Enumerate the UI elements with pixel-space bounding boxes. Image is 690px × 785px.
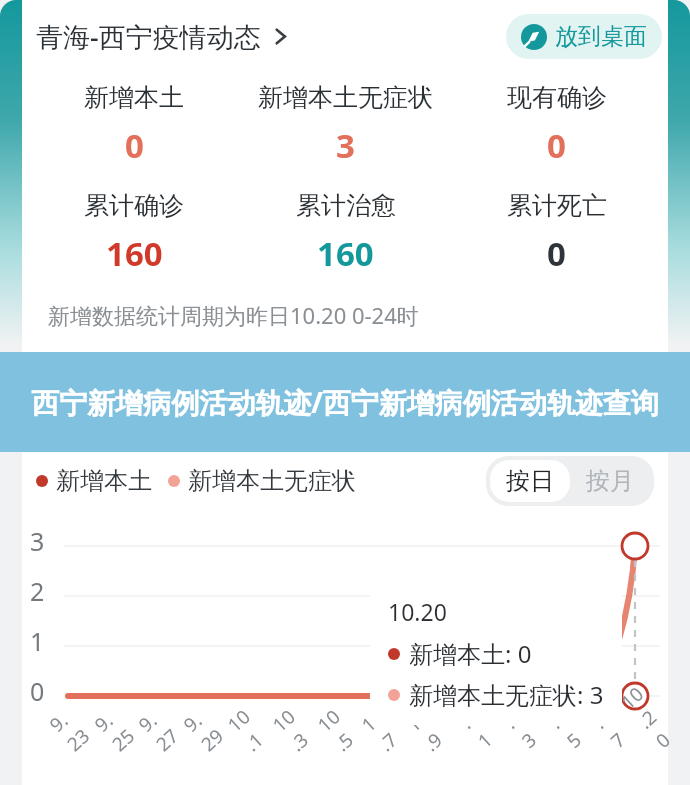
staticText: 新增本土 <box>56 466 152 496</box>
staticText: 10.11 <box>437 678 509 754</box>
staticText: 0 <box>30 674 45 708</box>
button[interactable]: 按日 <box>490 460 570 502</box>
staticText: 西宁新增病例活动轨迹/西宁新增病例活动轨迹查询 <box>31 383 659 421</box>
staticText: 160 <box>317 231 374 276</box>
staticText: 现有确诊 <box>507 82 607 113</box>
staticText: 3 <box>336 123 355 168</box>
staticText: 新增本土: 0 <box>409 637 532 670</box>
staticText: 9.23 <box>44 701 98 757</box>
staticText: 10.3 <box>267 701 321 757</box>
button[interactable]: 按月 <box>570 460 650 502</box>
staticText: 9.27 <box>133 701 187 757</box>
staticText: 0 <box>547 231 566 276</box>
staticText: 新增本土无症状: 3 <box>409 678 604 711</box>
staticText: 9.29 <box>178 701 232 757</box>
staticText: 累计确诊 <box>84 190 184 221</box>
staticText: 10.20 <box>388 596 447 627</box>
staticText: 新增本土无症状 <box>258 82 433 113</box>
staticText: 10.17 <box>570 678 642 754</box>
staticText: 0 <box>125 123 144 168</box>
staticText: 放到桌面 <box>555 22 647 51</box>
staticText: 1 <box>30 624 45 658</box>
staticText: 10.13 <box>481 678 553 754</box>
staticText: 0 <box>547 123 566 168</box>
button[interactable]: Add to home screen <box>506 14 662 59</box>
other: Add to home screen <box>521 24 547 50</box>
staticText: 10.20 <box>615 678 687 754</box>
staticText: 9.25 <box>89 701 143 757</box>
staticText: 青海-西宁疫情动态 <box>36 18 261 55</box>
staticText: 2 <box>30 574 45 608</box>
button[interactable]: 西宁新增病例活动轨迹/西宁新增病例活动轨迹查询 <box>0 352 690 452</box>
button[interactable]: 新增本土无症状 <box>168 466 356 496</box>
staticText: 新增本土无症状 <box>188 466 356 496</box>
staticText: 按日 <box>506 466 554 496</box>
staticText: 10.7 <box>356 701 410 757</box>
staticText: 10.15 <box>526 678 598 754</box>
staticText: 按月 <box>586 466 634 496</box>
staticText: 累计死亡 <box>507 190 607 221</box>
staticText: 3 <box>30 524 45 558</box>
button[interactable]: 新增本土 <box>36 466 152 496</box>
staticText: 160 <box>106 231 163 276</box>
staticText: 10.5 <box>312 701 366 757</box>
staticText: 累计治愈 <box>296 190 396 221</box>
staticText: 10.9 <box>401 701 455 757</box>
staticText: 新增本土 <box>84 82 184 113</box>
staticText: 10.1 <box>222 701 276 757</box>
staticText: 新增数据统计周期为昨日10.20 0-24时 <box>48 300 419 330</box>
button[interactable]: 青海-西宁疫情动态 <box>36 18 290 55</box>
